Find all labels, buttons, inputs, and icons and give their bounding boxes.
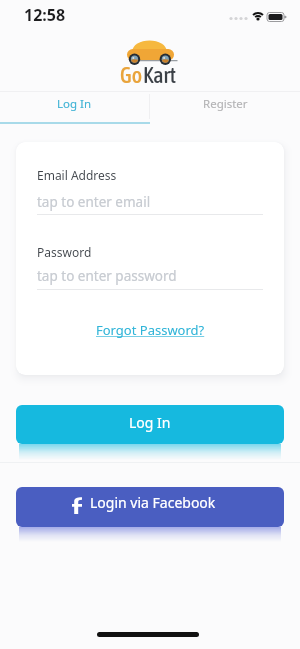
staticText: Email Address — [37, 167, 117, 183]
staticText: Kart — [143, 62, 177, 87]
staticText: Forgot Password? — [96, 321, 205, 339]
button[interactable]: Register — [150, 91, 300, 122]
staticText: Log In — [57, 96, 92, 112]
staticText: Register — [203, 96, 248, 112]
button[interactable]: tap to enter email — [37, 193, 263, 211]
button[interactable]: Login via Facebook — [16, 487, 284, 527]
staticText: Log In — [129, 413, 171, 432]
staticText: Go — [120, 62, 143, 87]
staticText: tap to enter password — [37, 267, 177, 285]
staticText: tap to enter email — [37, 193, 151, 211]
staticText: Password — [37, 244, 92, 260]
button[interactable]: Log In — [16, 405, 284, 444]
staticText: Login via Facebook — [90, 493, 216, 512]
button[interactable]: tap to enter password — [37, 267, 263, 285]
button[interactable]: Log In — [0, 91, 149, 122]
button[interactable]: Forgot Password? — [96, 321, 205, 339]
staticText: 12:58 — [24, 4, 66, 26]
